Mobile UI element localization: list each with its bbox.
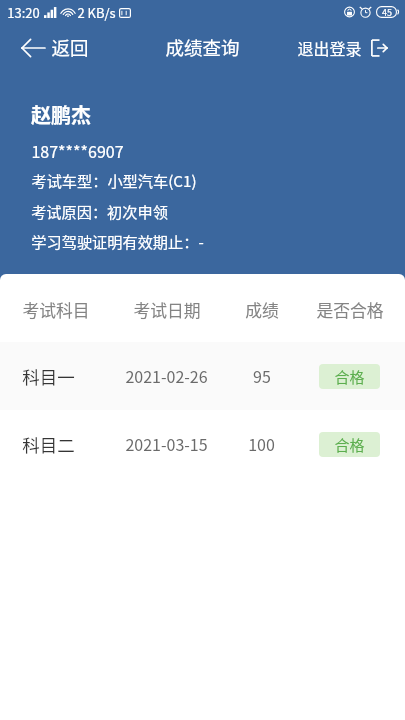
staticText: 2 KB/s xyxy=(77,3,116,22)
other: 返回 xyxy=(21,39,45,57)
staticText: 科目一 xyxy=(22,364,75,389)
staticText: 考试车型：小型汽车(C1) xyxy=(31,169,197,191)
staticText: 13:20 xyxy=(7,3,40,22)
button[interactable]: 返回 xyxy=(0,27,101,68)
button[interactable]: 退出登录 xyxy=(285,29,405,66)
staticText: 是否合格 xyxy=(316,298,384,322)
other: 退出登录 xyxy=(371,39,388,57)
staticText: 科目二 xyxy=(22,432,75,457)
staticText: 合格 xyxy=(334,366,365,388)
button[interactable]: 科目二 xyxy=(0,410,405,478)
button[interactable]: 科目一 xyxy=(0,342,405,410)
staticText: 成绩 xyxy=(245,298,279,322)
staticText: 返回 xyxy=(51,34,89,61)
staticText: 考试日期 xyxy=(133,298,201,322)
staticText: 成绩查询 xyxy=(165,34,240,61)
staticText: 考试原因：初次申领 xyxy=(31,200,168,222)
staticText: 2021-03-15 xyxy=(125,432,208,455)
staticText: 退出登录 xyxy=(297,36,362,59)
staticText: 考试科目 xyxy=(22,298,90,322)
staticText: 2021-02-26 xyxy=(125,364,208,387)
staticText: 赵鹏杰 xyxy=(31,100,91,128)
staticText: 187****6907 xyxy=(31,139,124,162)
staticText: 100 xyxy=(248,432,275,455)
staticText: 95 xyxy=(253,364,271,387)
staticText: 学习驾驶证明有效期止：- xyxy=(31,230,204,252)
staticText: 45 xyxy=(382,6,392,18)
other: Alarm xyxy=(360,6,371,18)
staticText: 合格 xyxy=(334,434,365,456)
other: Screen lock xyxy=(344,6,355,18)
